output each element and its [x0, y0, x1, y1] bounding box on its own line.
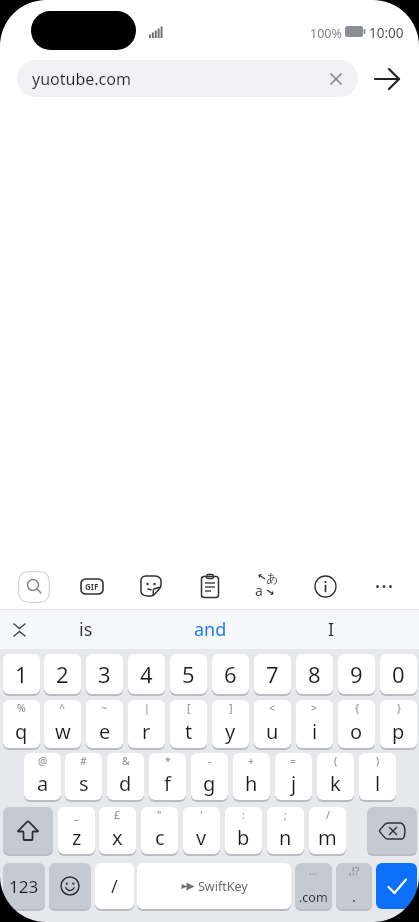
- button[interactable]: 5: [170, 654, 207, 694]
- button[interactable]: [326, 69, 346, 89]
- staticText: j: [291, 770, 297, 797]
- button[interactable]: ...: [295, 863, 332, 909]
- button[interactable]: 3: [86, 654, 123, 694]
- button[interactable]: [370, 574, 398, 599]
- button[interactable]: [3, 807, 53, 854]
- staticText: 6: [224, 659, 237, 689]
- staticText: yuotube.com: [32, 68, 131, 90]
- staticText: [: [187, 701, 191, 715]
- button[interactable]: ^: [44, 700, 81, 748]
- button[interactable]: ": [141, 807, 178, 854]
- staticText: {: [355, 701, 359, 715]
- button[interactable]: is: [26, 610, 146, 649]
- button[interactable]: &: [107, 753, 144, 800]
- button[interactable]: 8: [296, 654, 333, 694]
- button[interactable]: あ: [254, 570, 284, 602]
- button[interactable]: [6, 616, 34, 644]
- button[interactable]: 7: [254, 654, 291, 694]
- staticText: -: [208, 754, 212, 768]
- staticText: >: [311, 701, 318, 715]
- button[interactable]: =: [275, 753, 312, 800]
- staticText: ): [376, 754, 380, 768]
- button[interactable]: @: [24, 753, 61, 800]
- staticText: 7: [266, 659, 279, 689]
- button[interactable]: ,!?: [336, 863, 372, 909]
- staticText: m: [318, 824, 337, 851]
- staticText: 0: [392, 659, 405, 689]
- staticText: ^: [59, 701, 66, 715]
- staticText: s: [79, 770, 89, 797]
- staticText: o: [350, 718, 363, 745]
- staticText: 100%: [310, 25, 342, 42]
- button[interactable]: 123: [3, 863, 45, 909]
- button[interactable]: 0: [380, 654, 417, 694]
- button[interactable]: GIF: [78, 572, 106, 601]
- button[interactable]: [137, 572, 165, 601]
- button[interactable]: [18, 571, 50, 603]
- button[interactable]: *: [149, 753, 186, 800]
- button[interactable]: }: [380, 700, 417, 748]
- staticText: &: [122, 754, 130, 768]
- button[interactable]: [313, 574, 338, 599]
- staticText: :: [242, 808, 245, 822]
- button[interactable]: (: [317, 753, 354, 800]
- button[interactable]: [: [170, 700, 207, 748]
- button[interactable]: /: [309, 807, 346, 854]
- button[interactable]: #: [65, 753, 102, 800]
- staticText: *: [165, 754, 171, 768]
- staticText: 9: [350, 659, 363, 689]
- button[interactable]: /: [95, 863, 134, 909]
- staticText: c: [155, 824, 165, 851]
- button[interactable]: _: [58, 807, 95, 854]
- button[interactable]: yuotube.com: [17, 60, 358, 97]
- button[interactable]: :: [225, 807, 262, 854]
- staticText: 4: [140, 659, 153, 689]
- button[interactable]: 2: [44, 654, 81, 694]
- button[interactable]: [367, 807, 417, 854]
- button[interactable]: 4: [128, 654, 165, 694]
- staticText: i: [312, 718, 318, 745]
- button[interactable]: ): [359, 753, 396, 800]
- button[interactable]: |: [128, 700, 165, 748]
- staticText: あ: [266, 570, 279, 585]
- staticText: 3: [98, 659, 111, 689]
- staticText: u: [266, 718, 279, 745]
- button[interactable]: £: [99, 807, 136, 854]
- button[interactable]: ~: [86, 700, 123, 748]
- staticText: _: [74, 808, 79, 822]
- staticText: 123: [9, 875, 39, 898]
- staticText: q: [15, 718, 28, 745]
- staticText: SwiftKey: [198, 878, 248, 895]
- staticText: l: [375, 770, 381, 797]
- staticText: g: [203, 770, 216, 797]
- button[interactable]: and: [150, 610, 270, 649]
- staticText: p: [392, 718, 405, 745]
- button[interactable]: [196, 572, 224, 601]
- button[interactable]: ;: [267, 807, 304, 854]
- button[interactable]: ': [183, 807, 220, 854]
- staticText: (: [334, 754, 338, 768]
- staticText: y: [225, 718, 236, 745]
- staticText: /: [326, 808, 330, 822]
- button[interactable]: <: [254, 700, 291, 748]
- button[interactable]: I: [271, 610, 391, 649]
- button[interactable]: >: [296, 700, 333, 748]
- staticText: £: [114, 808, 121, 822]
- button[interactable]: [49, 863, 91, 909]
- button[interactable]: 6: [212, 654, 249, 694]
- button[interactable]: 1: [3, 654, 40, 694]
- button[interactable]: %: [3, 700, 40, 748]
- staticText: n: [279, 824, 292, 851]
- button[interactable]: {: [338, 700, 375, 748]
- staticText: I: [328, 617, 335, 642]
- staticText: r: [142, 718, 151, 745]
- staticText: .: [352, 886, 357, 906]
- staticText: and: [194, 617, 227, 642]
- button[interactable]: ]: [212, 700, 249, 748]
- button[interactable]: [376, 863, 417, 909]
- button[interactable]: [372, 64, 404, 94]
- button[interactable]: 9: [338, 654, 375, 694]
- button[interactable]: +: [233, 753, 270, 800]
- button[interactable]: -: [191, 753, 228, 800]
- button[interactable]: SwiftKey: [137, 863, 291, 909]
